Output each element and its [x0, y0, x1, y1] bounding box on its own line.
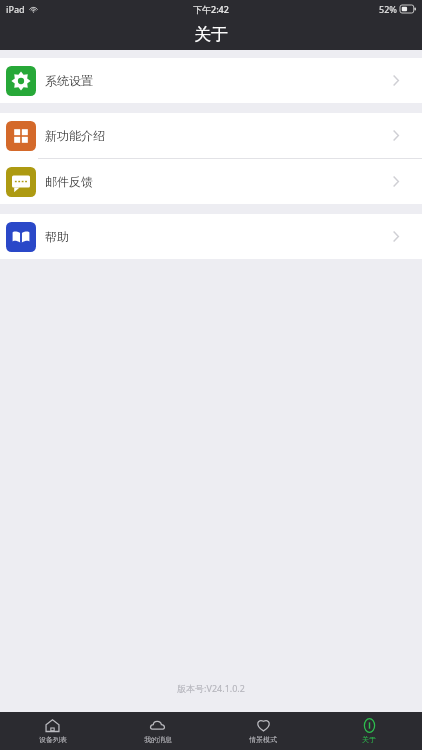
staticText: iPad	[6, 3, 25, 15]
staticText: 下午2:42	[193, 3, 229, 15]
staticText: 关于	[362, 735, 376, 744]
staticText: 邮件反馈	[45, 174, 93, 189]
button[interactable]: 系统设置	[0, 58, 422, 103]
button[interactable]: 我的消息	[105, 712, 210, 750]
button[interactable]: 新功能介绍	[0, 113, 422, 158]
button[interactable]: 情景模式	[210, 712, 316, 750]
button[interactable]: 设备列表	[0, 712, 105, 750]
button[interactable]: 邮件反馈	[0, 159, 422, 204]
staticText: 52%	[379, 3, 397, 15]
staticText: 帮助	[45, 229, 69, 244]
staticText: 我的消息	[144, 735, 172, 744]
staticText: 系统设置	[45, 73, 93, 88]
button[interactable]: 帮助	[0, 214, 422, 259]
staticText: 设备列表	[39, 735, 67, 744]
staticText: 关于	[194, 24, 228, 45]
button[interactable]: 关于	[316, 712, 422, 750]
staticText: 版本号:V24.1.0.2	[177, 682, 245, 694]
staticText: 新功能介绍	[45, 128, 105, 143]
staticText: 情景模式	[249, 735, 277, 744]
